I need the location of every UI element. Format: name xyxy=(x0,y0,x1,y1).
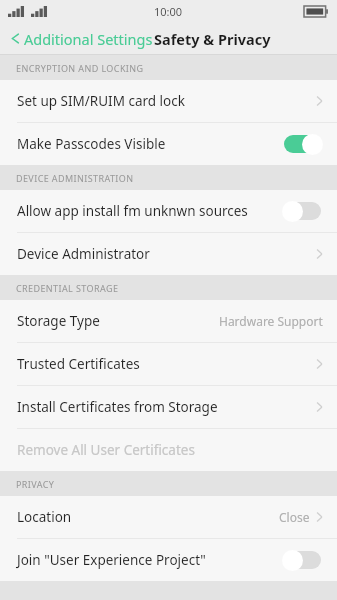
staticText: Trusted Certificates xyxy=(17,355,316,373)
button[interactable]: Location xyxy=(0,496,337,538)
button[interactable]: Allow app install fm unknwn sources xyxy=(0,190,337,232)
button[interactable]: Remove All User Certificates xyxy=(0,429,337,471)
button[interactable]: Storage Type xyxy=(0,300,337,342)
button[interactable]: Additional Settings xyxy=(0,22,159,55)
button[interactable]: Install Certificates from Storage xyxy=(0,386,337,428)
staticText: Hardware Support xyxy=(219,313,323,329)
staticText: ENCRYPTION AND LOCKING xyxy=(16,62,144,74)
staticText: Make Passcodes Visible xyxy=(17,135,282,153)
staticText: PRIVACY xyxy=(16,478,55,490)
staticText: CREDENTIAL STORAGE xyxy=(16,282,119,294)
staticText: Location xyxy=(17,508,279,526)
button[interactable]: Trusted Certificates xyxy=(0,343,337,385)
staticText: Close xyxy=(279,509,310,525)
staticText: 10:00 xyxy=(154,4,183,19)
staticText: Safety & Privacy xyxy=(154,29,271,49)
staticText: Install Certificates from Storage xyxy=(17,398,316,416)
staticText: Remove All User Certificates xyxy=(17,441,323,459)
staticText: Set up SIM/RUIM card lock xyxy=(17,92,316,110)
button[interactable]: Join "User Experience Project" xyxy=(0,539,337,581)
button[interactable]: Set up SIM/RUIM card lock xyxy=(0,80,337,122)
staticText: Device Administrator xyxy=(17,245,316,263)
staticText: Storage Type xyxy=(17,312,219,330)
staticText: Additional Settings xyxy=(24,29,153,49)
staticText: Allow app install fm unknwn sources xyxy=(17,202,282,220)
button[interactable]: Make Passcodes Visible xyxy=(0,123,337,165)
staticText: Join "User Experience Project" xyxy=(17,551,282,569)
button[interactable]: Device Administrator xyxy=(0,233,337,275)
staticText: DEVICE ADMINISTRATION xyxy=(16,172,134,184)
